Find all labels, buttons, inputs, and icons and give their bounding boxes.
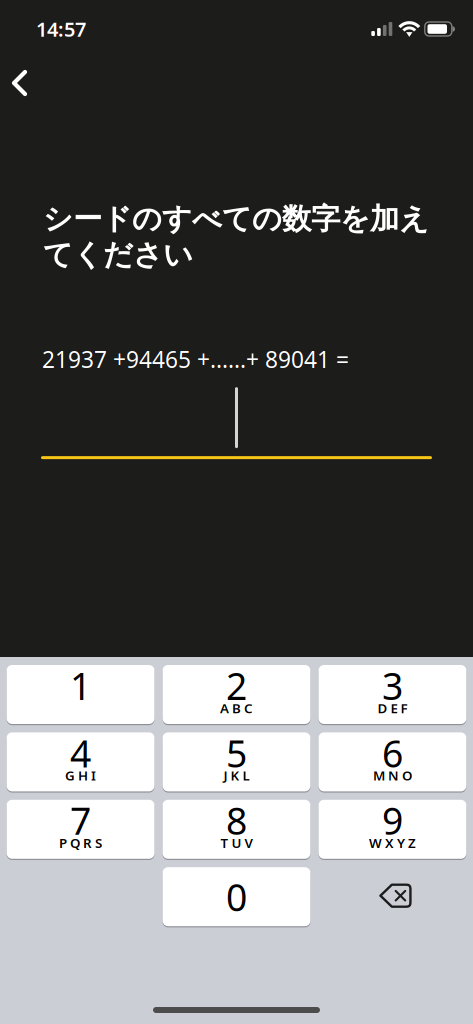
staticText: J K L: [223, 766, 249, 784]
button[interactable]: 6: [318, 732, 466, 791]
staticText: シードのすべての数字を加えてください: [43, 201, 429, 273]
button[interactable]: 2: [162, 665, 310, 724]
staticText: 21937 +94465 +......+ 89041 =: [42, 344, 349, 374]
staticText: 4: [70, 728, 91, 778]
button[interactable]: 4: [7, 732, 154, 791]
button[interactable]: Delete: [318, 867, 466, 926]
staticText: G H I: [65, 766, 96, 784]
button[interactable]: 8: [162, 800, 310, 859]
button[interactable]: Answer: [0, 387, 473, 459]
staticText: 5: [226, 728, 247, 778]
staticText: 3: [382, 661, 403, 710]
staticText: W X Y Z: [369, 834, 416, 852]
button[interactable]: 3: [318, 665, 466, 724]
staticText: M N O: [373, 766, 412, 784]
button[interactable]: 1: [7, 665, 154, 724]
staticText: 14:57: [36, 16, 86, 42]
staticText: T U V: [220, 834, 252, 852]
staticText: 7: [70, 795, 91, 845]
button[interactable]: Back: [0, 58, 43, 104]
staticText: 6: [382, 728, 403, 778]
button[interactable]: 7: [7, 800, 154, 859]
staticText: 8: [226, 795, 247, 845]
button[interactable]: 5: [162, 732, 310, 791]
staticText: 1: [70, 661, 91, 710]
staticText: 9: [382, 795, 403, 845]
staticText: 0: [226, 872, 247, 921]
staticText: A B C: [220, 699, 253, 717]
staticText: D E F: [377, 699, 407, 717]
button[interactable]: 0: [162, 867, 310, 926]
staticText: P Q R S: [59, 834, 102, 852]
staticText: 2: [226, 661, 247, 710]
button[interactable]: 9: [318, 800, 466, 859]
